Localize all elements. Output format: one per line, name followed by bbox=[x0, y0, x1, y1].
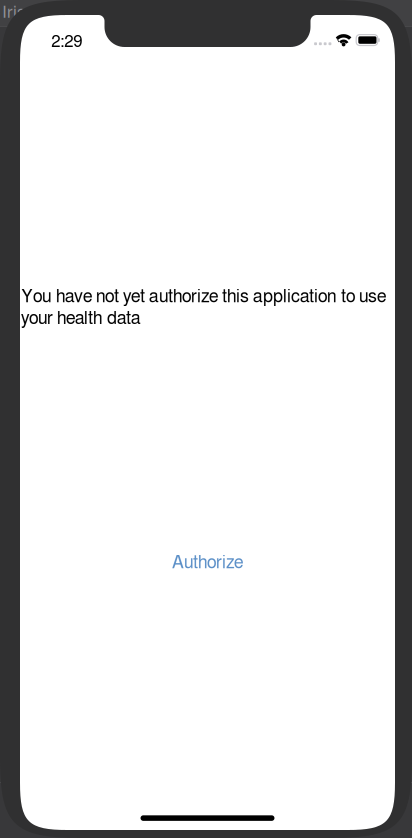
button[interactable]: Authorize bbox=[147, 546, 267, 580]
staticText: Iris c bbox=[2, 4, 39, 21]
staticText: 2:29 bbox=[51, 34, 82, 50]
staticText: Authorize bbox=[172, 554, 243, 572]
staticText: You have not yet authorize this applicat… bbox=[21, 288, 386, 306]
staticText: your health data bbox=[21, 310, 141, 327]
